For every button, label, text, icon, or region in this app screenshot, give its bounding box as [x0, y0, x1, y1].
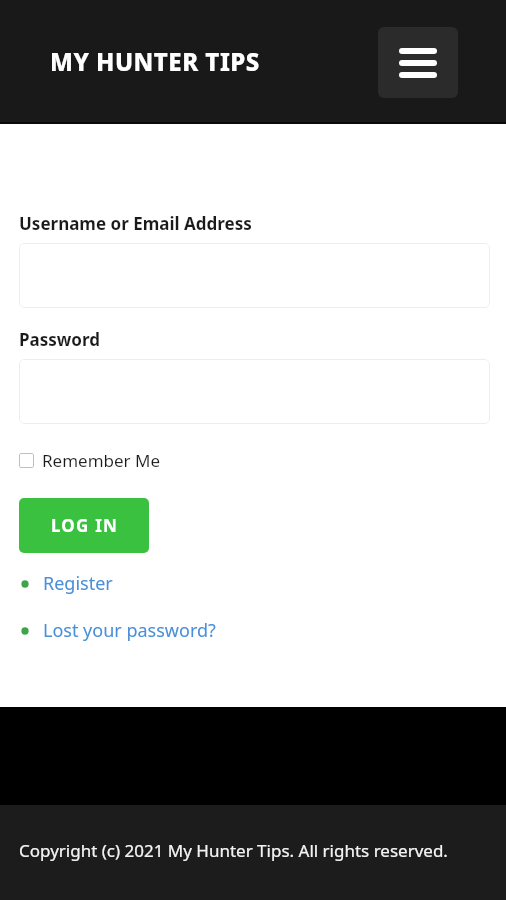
button[interactable]: MY HUNTER TIPS — [50, 45, 260, 78]
staticText: LOG IN — [51, 514, 118, 537]
staticText: Register — [43, 571, 113, 596]
button[interactable]: Remember Me — [19, 449, 161, 472]
staticText: Username or Email Address — [19, 212, 252, 235]
button[interactable] — [19, 243, 490, 308]
button[interactable]: Register — [19, 571, 113, 596]
staticText: Password — [19, 328, 100, 351]
staticText: Remember Me — [42, 449, 161, 472]
button[interactable]: Menu — [378, 27, 458, 98]
button[interactable]: LOG IN — [19, 498, 149, 553]
staticText: Lost your password? — [43, 618, 216, 643]
staticText: Copyright (c) 2021 My Hunter Tips. All r… — [19, 839, 506, 862]
button[interactable] — [19, 359, 490, 424]
button[interactable]: Lost your password? — [19, 618, 216, 643]
